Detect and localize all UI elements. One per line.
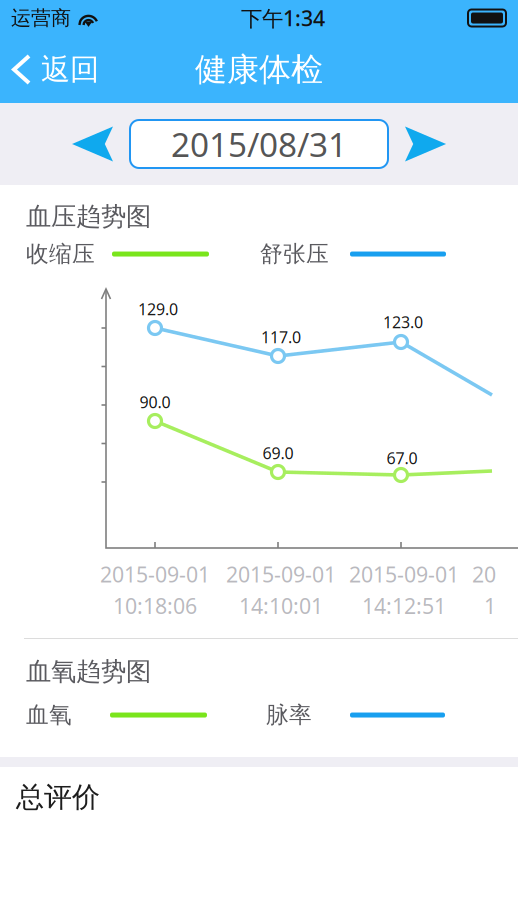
staticText: 运营商 bbox=[11, 6, 71, 30]
staticText: 返回 bbox=[41, 51, 99, 87]
staticText: 健康体检 bbox=[195, 50, 323, 89]
staticText: 129.0 bbox=[138, 298, 178, 320]
staticText: 2015-09-01 bbox=[100, 560, 210, 588]
staticText: 67.0 bbox=[386, 447, 417, 469]
staticText: 2015/08/31 bbox=[171, 122, 347, 166]
staticText: 20 bbox=[472, 560, 496, 588]
staticText: 下午1:34 bbox=[241, 4, 325, 32]
button[interactable]: Previous day bbox=[64, 118, 121, 169]
staticText: 舒张压 bbox=[260, 240, 329, 268]
staticText: 总评价 bbox=[16, 780, 100, 814]
staticText: 收缩压 bbox=[26, 240, 95, 268]
staticText: 69.0 bbox=[262, 442, 293, 464]
staticText: 117.0 bbox=[261, 326, 301, 348]
staticText: 123.0 bbox=[383, 311, 423, 333]
staticText: 90.0 bbox=[139, 391, 170, 413]
staticText: 血氧趋势图 bbox=[26, 656, 151, 687]
staticText: 14:10:01 bbox=[239, 591, 323, 620]
staticText: 血压趋势图 bbox=[26, 201, 151, 232]
button[interactable]: 返回 bbox=[0, 36, 109, 102]
staticText: 血氧 bbox=[26, 701, 72, 729]
staticText: 1 bbox=[484, 591, 496, 620]
staticText: 2015-09-01 bbox=[226, 560, 336, 588]
staticText: 14:12:51 bbox=[362, 591, 446, 620]
staticText: 2015-09-01 bbox=[349, 560, 459, 588]
button[interactable]: Next day bbox=[397, 118, 454, 169]
staticText: 10:18:06 bbox=[113, 591, 197, 620]
staticText: 脉率 bbox=[266, 701, 312, 729]
